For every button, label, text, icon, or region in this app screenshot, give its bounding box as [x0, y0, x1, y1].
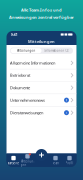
staticText: Startseite [7, 161, 19, 165]
staticText: Mitteilungen [20, 160, 34, 167]
staticText: 3 [65, 98, 67, 102]
button[interactable]: Startseite [6, 156, 20, 165]
staticText: Dienstanweisungen [10, 110, 43, 115]
button[interactable]: Mitteilungen [11, 48, 41, 53]
staticText: Betriebsrat [10, 73, 30, 78]
button[interactable]: Informationen (2) [41, 48, 72, 53]
staticText: Profil [65, 161, 73, 165]
staticText: Unternehmensnews [10, 97, 45, 103]
staticText: Dokumente [10, 85, 30, 90]
staticText: 9:41 [10, 32, 17, 37]
staticText: Informationen (2) [44, 49, 69, 52]
button[interactable]: Mitteilungen [20, 154, 34, 167]
staticText: Mitteilungen [17, 49, 36, 52]
button[interactable]: Allgemeine Informationen [6, 57, 76, 69]
button[interactable]: Unternehmensnews [6, 94, 76, 106]
button[interactable]: Neu erstellen [35, 149, 47, 161]
staticText: Allgemeine Informationen [10, 60, 55, 65]
button[interactable]: Team [48, 156, 62, 165]
button[interactable]: Profil [62, 156, 76, 165]
staticText: Team [52, 161, 58, 165]
button[interactable]: Dokumente [6, 82, 76, 94]
button[interactable]: Dienstanweisungen [6, 106, 76, 119]
button[interactable]: Betriebsrat [6, 69, 76, 82]
staticText: Anweisungen zentral verfügbar [9, 14, 74, 20]
staticText: Alle Team-Infos und [21, 7, 62, 12]
staticText: Mitteilungen [28, 39, 55, 44]
staticText: 1 [65, 111, 67, 114]
